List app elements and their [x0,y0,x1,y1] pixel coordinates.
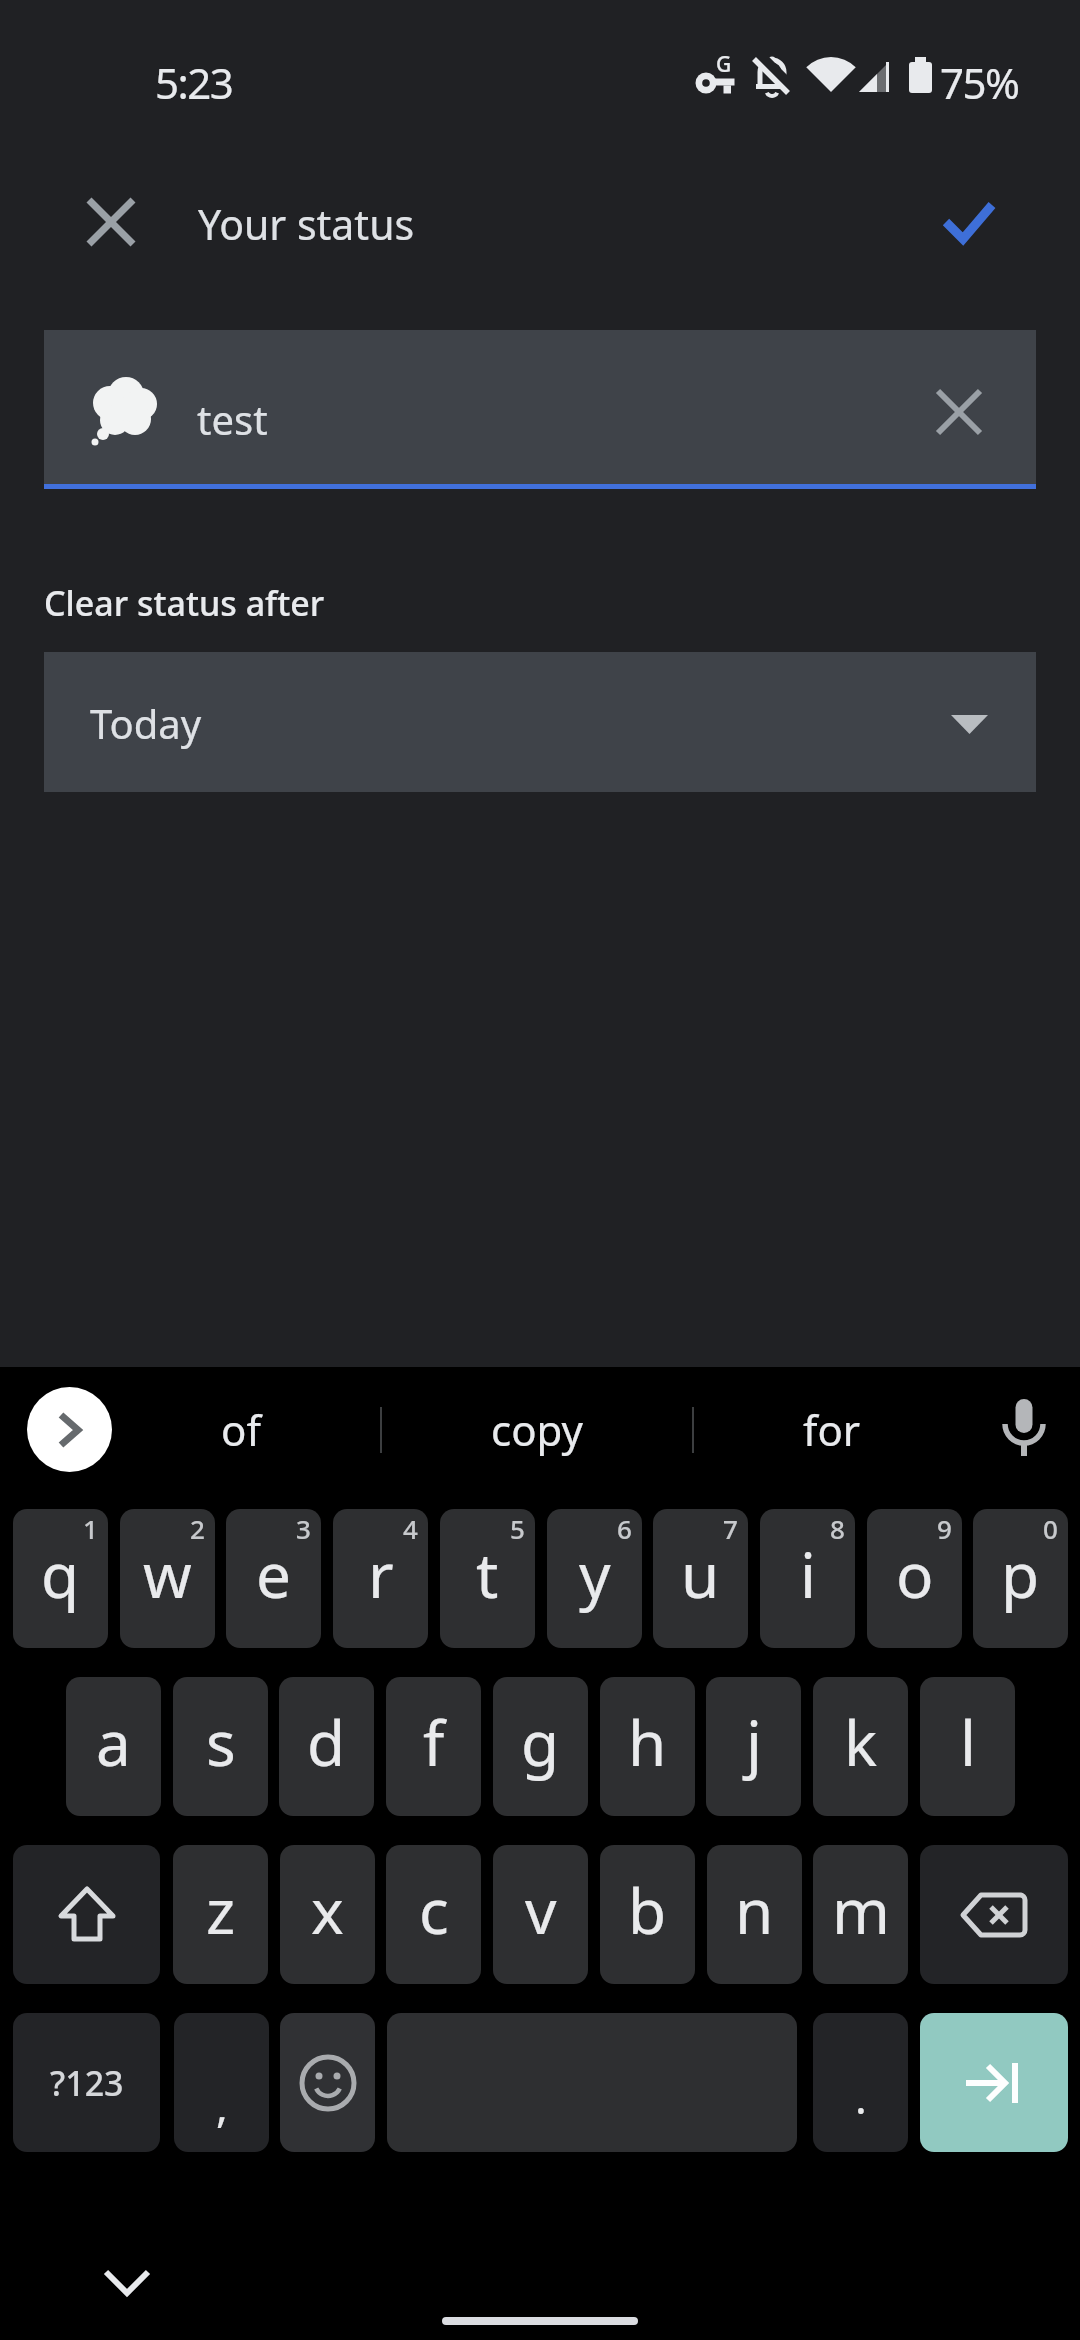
staticText: q [41,1532,80,1616]
staticText: v [525,1868,557,1952]
button[interactable]: , [174,2013,269,2152]
staticText: 3 [296,1511,311,1546]
button[interactable]: i [760,1509,855,1648]
staticText: for [803,1401,861,1458]
button[interactable]: w [120,1509,215,1648]
button[interactable]: v [493,1845,588,1984]
staticText: o [896,1532,934,1616]
staticText: Your status [198,196,415,252]
staticText: 5:23 [155,54,233,111]
staticText: G [716,50,732,79]
button[interactable]: ?123 [13,2013,160,2152]
staticText: d [307,1700,346,1784]
staticText: 4 [403,1511,418,1546]
button[interactable]: m [813,1845,908,1984]
button[interactable] [13,1845,160,1984]
staticText: k [844,1700,878,1784]
button[interactable]: Today [44,652,1036,792]
button[interactable]: p [973,1509,1068,1648]
staticText: w [143,1532,192,1616]
button[interactable]: t [440,1509,535,1648]
staticText: g [521,1700,560,1784]
button[interactable] [920,2013,1068,2152]
staticText: c [419,1868,449,1952]
button[interactable]: z [173,1845,268,1984]
staticText: 6 [617,1511,632,1546]
button[interactable] [77,188,145,256]
button[interactable]: x [280,1845,375,1984]
button[interactable]: test [44,330,1036,488]
button[interactable]: of [136,1387,346,1472]
button[interactable]: h [600,1677,695,1816]
staticText: 9 [937,1511,952,1546]
button[interactable]: s [173,1677,268,1816]
staticText: z [206,1868,236,1952]
staticText: h [628,1700,667,1784]
staticText: 0 [1043,1511,1058,1546]
button[interactable]: q [13,1509,108,1648]
staticText: y [579,1532,611,1616]
staticText: 8 [830,1511,845,1546]
staticText: 2 [190,1511,205,1546]
button[interactable] [916,369,1002,455]
staticText: 7 [723,1511,738,1546]
button[interactable]: f [386,1677,481,1816]
staticText: m [832,1868,890,1952]
staticText: test [197,392,268,446]
button[interactable] [936,193,1004,261]
staticText: f [423,1700,445,1784]
button[interactable]: copy [400,1387,674,1472]
staticText: 1 [83,1511,98,1546]
staticText: b [628,1868,667,1952]
button[interactable] [27,1387,112,1472]
staticText: i [800,1532,816,1616]
button[interactable]: k [813,1677,908,1816]
staticText: t [476,1532,499,1616]
staticText: Today [90,696,202,750]
staticText: , [216,2075,228,2135]
button[interactable]: n [707,1845,802,1984]
staticText: . [855,2067,867,2127]
button[interactable]: d [279,1677,374,1816]
staticText: ?123 [50,2060,124,2106]
button[interactable] [984,1389,1064,1469]
button[interactable]: l [920,1677,1015,1816]
button[interactable]: o [867,1509,962,1648]
button[interactable] [280,2013,375,2152]
button[interactable]: g [493,1677,588,1816]
button[interactable]: e [226,1509,321,1648]
staticText: x [311,1868,344,1952]
staticText: j [746,1700,762,1784]
staticText: l [960,1700,976,1784]
staticText: n [735,1868,774,1952]
button[interactable]: u [653,1509,748,1648]
staticText: 5 [510,1511,525,1546]
staticText: of [221,1401,261,1458]
button[interactable]: a [66,1677,161,1816]
button[interactable] [87,2253,167,2313]
button[interactable]: . [813,2013,908,2152]
staticText: e [256,1532,291,1616]
staticText: copy [491,1401,583,1458]
button[interactable] [920,1845,1068,1984]
staticText: p [1001,1532,1040,1616]
button[interactable]: j [706,1677,801,1816]
staticText: u [681,1532,720,1616]
button[interactable]: c [386,1845,481,1984]
button[interactable]: r [333,1509,428,1648]
button[interactable]: for [712,1387,952,1472]
staticText: Clear status after [44,580,325,626]
staticText: r [368,1532,394,1616]
button[interactable]: y [547,1509,642,1648]
staticText: 75% [940,54,1019,111]
staticText: s [206,1700,236,1784]
button[interactable]: b [600,1845,695,1984]
staticText: a [96,1700,131,1784]
